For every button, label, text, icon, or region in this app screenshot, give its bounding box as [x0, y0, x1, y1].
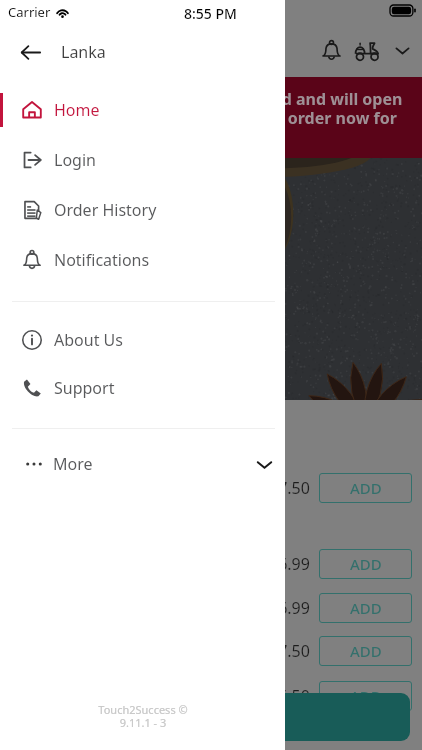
- staticText: About Us: [54, 329, 123, 351]
- staticText: £7.50: [269, 640, 310, 662]
- staticText: ADD: [350, 686, 382, 706]
- button[interactable]: ADD: [319, 681, 412, 711]
- button[interactable]: Support: [0, 363, 285, 413]
- button[interactable]: £7.50: [0, 473, 422, 503]
- button[interactable]: £7.50: [0, 636, 422, 666]
- button[interactable]: ADD: [319, 473, 412, 503]
- staticText: 8:55 PM: [184, 4, 237, 23]
- staticText: £6.99: [269, 553, 310, 575]
- staticText: Home: [54, 99, 100, 121]
- button[interactable]: Notifications: [0, 235, 285, 285]
- staticText: Order History: [54, 199, 157, 221]
- button[interactable]: Login: [0, 135, 285, 185]
- staticText: £7.50: [269, 477, 310, 499]
- button[interactable]: £6.99: [0, 593, 422, 623]
- staticText: Carrier: [8, 3, 51, 21]
- staticText: Lanka: [61, 41, 106, 63]
- staticText: ADD: [350, 478, 382, 498]
- button[interactable]: ADD: [319, 549, 412, 579]
- button[interactable]: Sorry, the store is currently closed and…: [0, 77, 422, 158]
- button[interactable]: ADD: [319, 593, 412, 623]
- button[interactable]: Home: [0, 85, 285, 135]
- button[interactable]: Back: [13, 35, 47, 69]
- staticText: ADD: [350, 554, 382, 574]
- button[interactable]: Expand: [385, 33, 419, 67]
- staticText: Sorry, the store is currently closed and…: [0, 88, 422, 148]
- button[interactable]: £6.99: [0, 549, 422, 579]
- button[interactable]: Notifications: [313, 32, 349, 68]
- staticText: £6.99: [269, 597, 310, 619]
- staticText: Touch2Success © 9.11.1 - 3: [98, 702, 188, 730]
- button[interactable]: About Us: [0, 315, 285, 365]
- staticText: ADD: [350, 641, 382, 661]
- button[interactable]: View Basket: [12, 693, 410, 741]
- staticText: View Basket: [165, 706, 257, 728]
- button[interactable]: ADD: [319, 636, 412, 666]
- button[interactable]: £6.50: [0, 681, 422, 711]
- staticText: More: [53, 453, 93, 475]
- button[interactable]: Order History: [0, 185, 285, 235]
- staticText: Notifications: [54, 249, 150, 271]
- button[interactable]: More: [0, 439, 285, 489]
- staticText: Login: [54, 149, 96, 171]
- staticText: Support: [54, 377, 115, 399]
- staticText: £6.50: [269, 685, 310, 707]
- staticText: ADD: [350, 598, 382, 618]
- button[interactable]: Delivery: [349, 32, 385, 68]
